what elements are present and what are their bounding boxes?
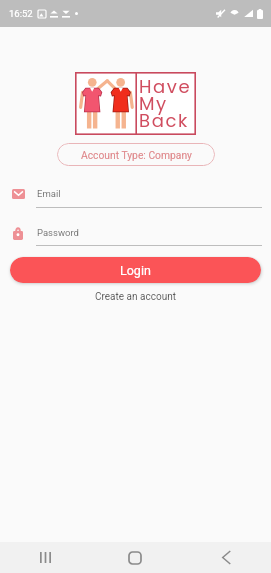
staticText: Have — [139, 74, 192, 99]
staticText: Account Type: Company — [81, 149, 192, 161]
staticText: Password — [37, 227, 79, 238]
staticText: My — [139, 91, 168, 116]
staticText: Login — [120, 263, 151, 278]
staticText: Back — [139, 108, 189, 133]
button[interactable]: Account Type: Company — [57, 143, 215, 166]
button[interactable]: Recents — [24, 542, 66, 573]
button[interactable]: Home — [114, 542, 156, 573]
button[interactable]: Login — [10, 257, 261, 283]
staticText: Create an account — [95, 291, 176, 303]
button[interactable]: Back — [205, 542, 247, 573]
button[interactable]: Create an account — [87, 288, 184, 306]
staticText: 16:52 — [9, 8, 33, 19]
staticText: Email — [37, 188, 61, 199]
